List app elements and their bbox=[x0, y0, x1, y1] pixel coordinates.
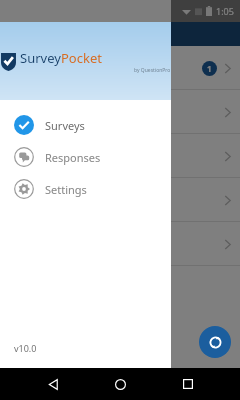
staticText: Pocket bbox=[61, 49, 102, 67]
staticText: v10.0 bbox=[14, 342, 37, 354]
button[interactable] bbox=[0, 222, 240, 266]
staticText: Responses bbox=[45, 150, 101, 165]
button[interactable]: Recents bbox=[173, 369, 203, 399]
staticText: by QuestionPro bbox=[134, 67, 171, 74]
staticText: Surveys bbox=[45, 118, 85, 133]
button[interactable]: Sync bbox=[199, 326, 231, 358]
staticText: 1:05 bbox=[216, 5, 234, 17]
button[interactable] bbox=[0, 90, 240, 134]
button[interactable]: Surveys bbox=[0, 109, 171, 141]
button[interactable]: Home bbox=[105, 369, 135, 399]
staticText: 1 bbox=[207, 63, 212, 74]
button[interactable] bbox=[0, 178, 240, 222]
button[interactable] bbox=[0, 134, 240, 178]
button[interactable]: 1 bbox=[0, 46, 240, 90]
staticText: Settings bbox=[45, 182, 87, 197]
button[interactable]: Back bbox=[38, 369, 68, 399]
button[interactable]: Settings bbox=[0, 173, 171, 205]
staticText: Survey bbox=[20, 49, 61, 67]
button[interactable]: Responses bbox=[0, 141, 171, 173]
